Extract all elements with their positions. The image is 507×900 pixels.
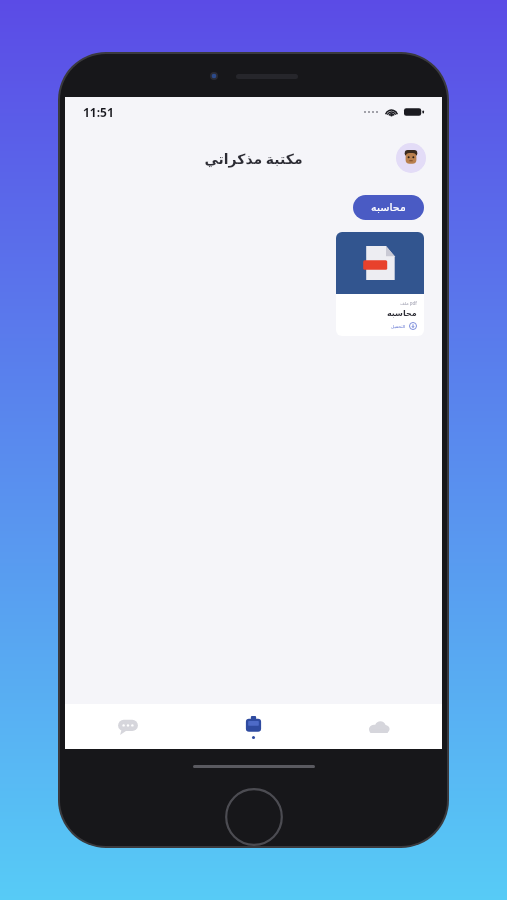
button[interactable]: ملف pdf bbox=[336, 232, 424, 336]
button[interactable]: محاسبه bbox=[353, 195, 424, 220]
staticText: التحميل bbox=[391, 324, 406, 329]
button[interactable]: Cloud bbox=[316, 704, 442, 749]
staticText: مكتبة مذكراتي bbox=[204, 149, 303, 168]
button[interactable]: Chats bbox=[65, 704, 190, 749]
button[interactable]: Library bbox=[190, 704, 316, 749]
staticText: محاسبه bbox=[371, 201, 406, 214]
staticText: ملف pdf bbox=[400, 300, 417, 306]
staticText: محاسبه bbox=[387, 309, 417, 318]
staticText: 11:51 bbox=[83, 104, 114, 120]
button[interactable]: Profile bbox=[396, 143, 426, 173]
